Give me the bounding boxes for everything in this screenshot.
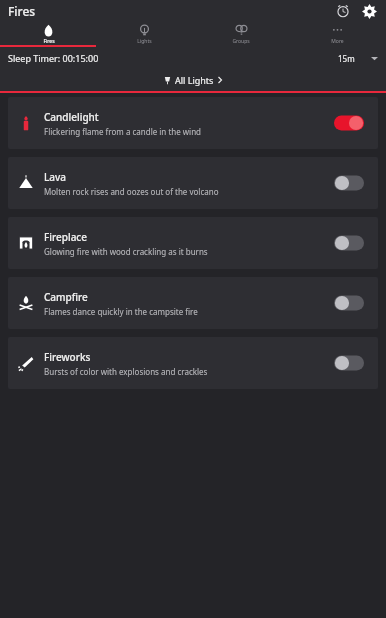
button[interactable]: Campfire (8, 277, 378, 329)
button[interactable]: 15m (338, 53, 378, 64)
staticText: Molten rock rises and oozes out of the v… (44, 186, 219, 197)
button[interactable]: Settings (358, 0, 380, 22)
staticText: Candlelight (44, 110, 99, 124)
staticText: Fireworks (44, 350, 91, 364)
button[interactable]: Fireplace (8, 217, 378, 269)
button[interactable]: Toggle Candlelight (334, 114, 364, 132)
button[interactable]: Toggle Campfire (334, 294, 364, 312)
staticText: Fireplace (44, 230, 88, 244)
button[interactable]: Groups (192, 22, 289, 47)
staticText: Campfire (44, 290, 88, 304)
staticText: Bursts of color with explosions and crac… (44, 366, 208, 377)
button[interactable]: Candlelight (8, 97, 378, 149)
staticText: Fires (8, 3, 36, 19)
staticText: Flames dance quickly in the campsite fir… (44, 306, 198, 317)
staticText: Groups (232, 38, 250, 45)
button[interactable]: Toggle Fireplace (334, 234, 364, 252)
button[interactable]: Fireworks (8, 337, 378, 389)
staticText: Lights (137, 38, 152, 45)
button[interactable]: Lights (96, 22, 192, 47)
staticText: All Lights (175, 74, 214, 86)
staticText: Lava (44, 170, 67, 184)
staticText: Fires (43, 38, 55, 45)
staticText: Glowing fire with wood crackling as it b… (44, 246, 208, 257)
staticText: More (331, 38, 344, 45)
button[interactable]: Fires (0, 22, 96, 47)
button[interactable]: Alarm (332, 0, 354, 22)
staticText: Sleep Timer: 00:15:00 (8, 52, 99, 64)
button[interactable]: All Lights (163, 74, 223, 86)
staticText: 15m (338, 53, 355, 64)
button[interactable]: Toggle Fireworks (334, 354, 364, 372)
staticText: Flickering flame from a candle in the wi… (44, 126, 202, 137)
button[interactable]: Lava (8, 157, 378, 209)
button[interactable]: Toggle Lava (334, 174, 364, 192)
button[interactable]: More (289, 22, 386, 47)
